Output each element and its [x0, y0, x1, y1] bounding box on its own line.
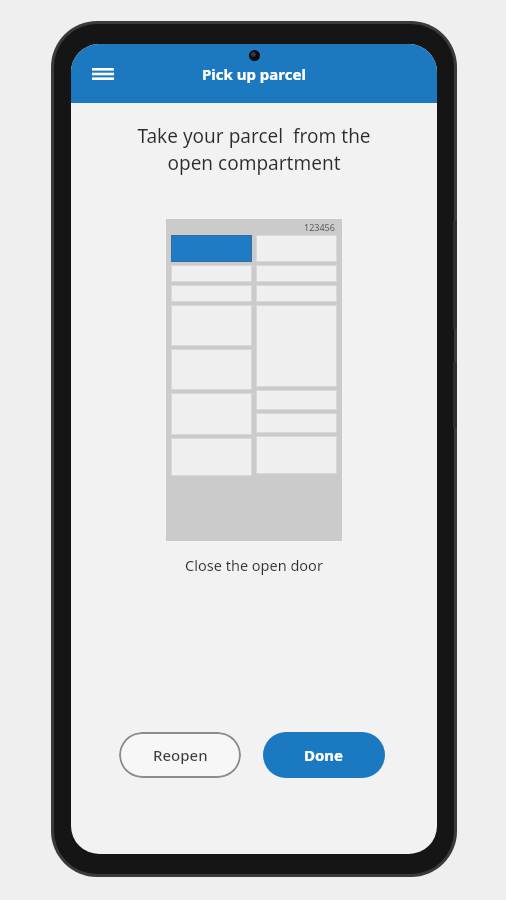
button[interactable]	[256, 436, 337, 474]
button[interactable]: Open compartment	[171, 235, 252, 262]
button[interactable]: Reopen	[119, 732, 241, 778]
button[interactable]	[171, 285, 252, 302]
button[interactable]	[256, 390, 337, 410]
staticText: Close the open door	[71, 555, 437, 575]
staticText: Take your parcel from the open compartme…	[85, 123, 423, 176]
button[interactable]	[171, 305, 252, 346]
button[interactable]	[256, 285, 337, 302]
button[interactable]	[171, 393, 252, 435]
staticText: Pick up parcel	[202, 64, 306, 84]
button[interactable]: Done	[263, 732, 385, 778]
staticText: Reopen	[153, 745, 208, 765]
button[interactable]: Menu	[81, 52, 125, 96]
button[interactable]	[256, 235, 337, 262]
staticText: Done	[304, 745, 344, 765]
button[interactable]	[256, 305, 337, 387]
button[interactable]	[171, 349, 252, 390]
button[interactable]	[171, 438, 252, 476]
staticText: 123456	[304, 221, 335, 233]
button[interactable]	[171, 265, 252, 282]
button[interactable]	[256, 265, 337, 282]
button[interactable]	[256, 413, 337, 433]
